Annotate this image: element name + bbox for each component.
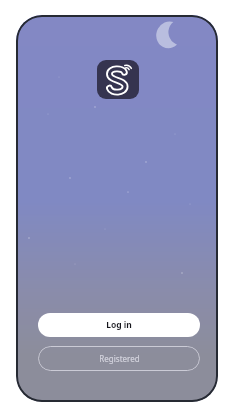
button[interactable]: Registered — [38, 346, 200, 371]
staticText: Log in — [106, 319, 132, 331]
button[interactable]: Log in — [38, 313, 200, 337]
staticText: Registered — [99, 353, 140, 364]
